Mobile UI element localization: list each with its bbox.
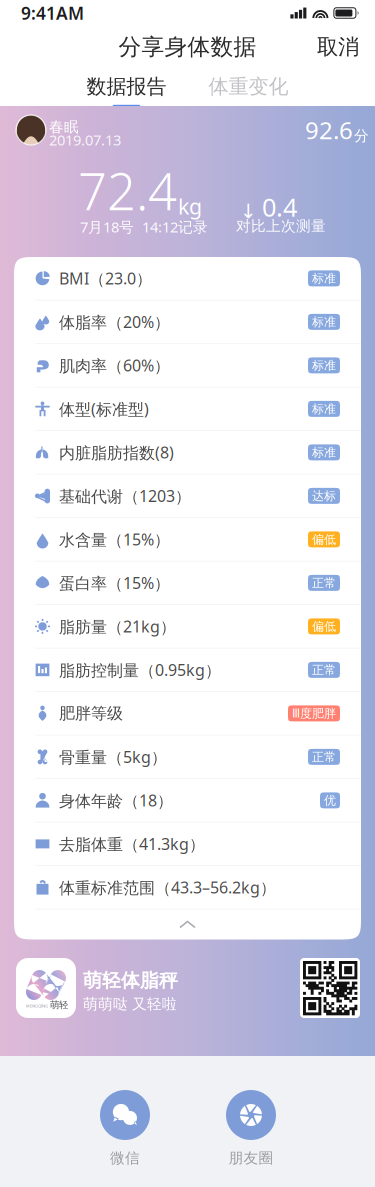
staticText: 水含量（15%）	[59, 529, 170, 550]
staticText: 92.6	[305, 114, 353, 146]
staticText: 72.4	[78, 157, 177, 224]
staticText: 标准	[312, 314, 336, 329]
staticText: 身体年龄（18）	[59, 790, 173, 811]
staticText: Ⅲ度肥胖	[292, 706, 336, 721]
staticText: 标准	[312, 358, 336, 373]
staticText: 朋友圈	[228, 1149, 273, 1167]
staticText: 正常	[312, 575, 336, 590]
button[interactable]: 脂肪量（21kg）	[14, 605, 361, 648]
button[interactable]: 朋友圈	[225, 1090, 277, 1167]
staticText: 脂肪量（21kg）	[59, 616, 176, 637]
staticText: 偏低	[312, 532, 336, 547]
staticText: 优	[324, 793, 336, 808]
staticText: 基础代谢（1203）	[59, 485, 191, 506]
button[interactable]: 体重标准范围（43.3–56.2kg）	[14, 866, 361, 909]
staticText: 蛋白率（15%）	[59, 572, 170, 593]
staticText: 内脏脂肪指数(8)	[59, 442, 174, 463]
button[interactable]: 数据报告	[86, 68, 166, 106]
staticText: 体型(标准型)	[59, 398, 149, 419]
staticText: 标准	[312, 271, 336, 286]
button[interactable]: 体脂率（20%）	[14, 300, 361, 344]
staticText: 0.4	[262, 190, 297, 224]
staticText: 脂肪控制量（0.95kg）	[59, 659, 221, 680]
button[interactable]: 收起	[14, 909, 361, 939]
button[interactable]: 体型(标准型)	[14, 387, 361, 431]
staticText: BMI（23.0）	[59, 268, 152, 289]
button[interactable]: 身体年龄（18）	[14, 779, 361, 822]
staticText: 标准	[312, 401, 336, 416]
staticText: 微信	[110, 1149, 140, 1167]
button[interactable]: 水含量（15%）	[14, 518, 361, 561]
staticText: 数据报告	[86, 74, 166, 99]
button[interactable]: 蛋白率（15%）	[14, 561, 361, 605]
staticText: 标准	[312, 445, 336, 460]
staticText: kg	[178, 192, 202, 220]
button[interactable]: 骨重量（5kg）	[14, 735, 361, 779]
button[interactable]: BMI（23.0）	[14, 257, 361, 300]
button[interactable]: 肥胖等级	[14, 692, 361, 735]
button[interactable]: 去脂体重（41.3kg）	[14, 822, 361, 866]
staticText: 肥胖等级	[59, 704, 123, 723]
staticText: 7月18号 14:12记录	[80, 217, 208, 236]
staticText: 去脂体重（41.3kg）	[59, 833, 205, 854]
staticText: MENGQING	[26, 1003, 48, 1009]
staticText: 9:41AM	[21, 1, 84, 24]
staticText: 骨重量（5kg）	[59, 746, 167, 767]
staticText: 分	[354, 127, 369, 145]
staticText: 正常	[312, 662, 336, 677]
staticText: 2019.07.13	[49, 130, 121, 149]
staticText: 肌肉率（60%）	[59, 355, 170, 376]
button[interactable]: 脂肪控制量（0.95kg）	[14, 648, 361, 692]
button[interactable]: 微信	[99, 1090, 151, 1167]
staticText: 取消	[317, 34, 359, 60]
staticText: 春眠	[49, 118, 79, 136]
staticText: 体重标准范围（43.3–56.2kg）	[59, 877, 276, 898]
staticText: 体重变化	[208, 74, 288, 99]
staticText: 萌轻体脂秤	[83, 969, 178, 992]
staticText: 偏低	[312, 619, 336, 634]
staticText: ↓	[240, 200, 257, 223]
staticText: 分享身体数据	[118, 33, 256, 61]
staticText: 达标	[312, 488, 336, 503]
button[interactable]: 内脏脂肪指数(8)	[14, 431, 361, 474]
staticText: 萌萌哒 又轻啦	[83, 995, 177, 1013]
button[interactable]: 肌肉率（60%）	[14, 344, 361, 387]
staticText: 对比上次测量	[236, 217, 326, 235]
staticText: 体脂率（20%）	[59, 311, 170, 332]
button[interactable]: 基础代谢（1203）	[14, 474, 361, 518]
staticText: 萌轻	[50, 999, 68, 1011]
button[interactable]: 取消	[301, 26, 375, 68]
staticText: 正常	[312, 749, 336, 764]
button[interactable]: 体重变化	[208, 68, 288, 106]
